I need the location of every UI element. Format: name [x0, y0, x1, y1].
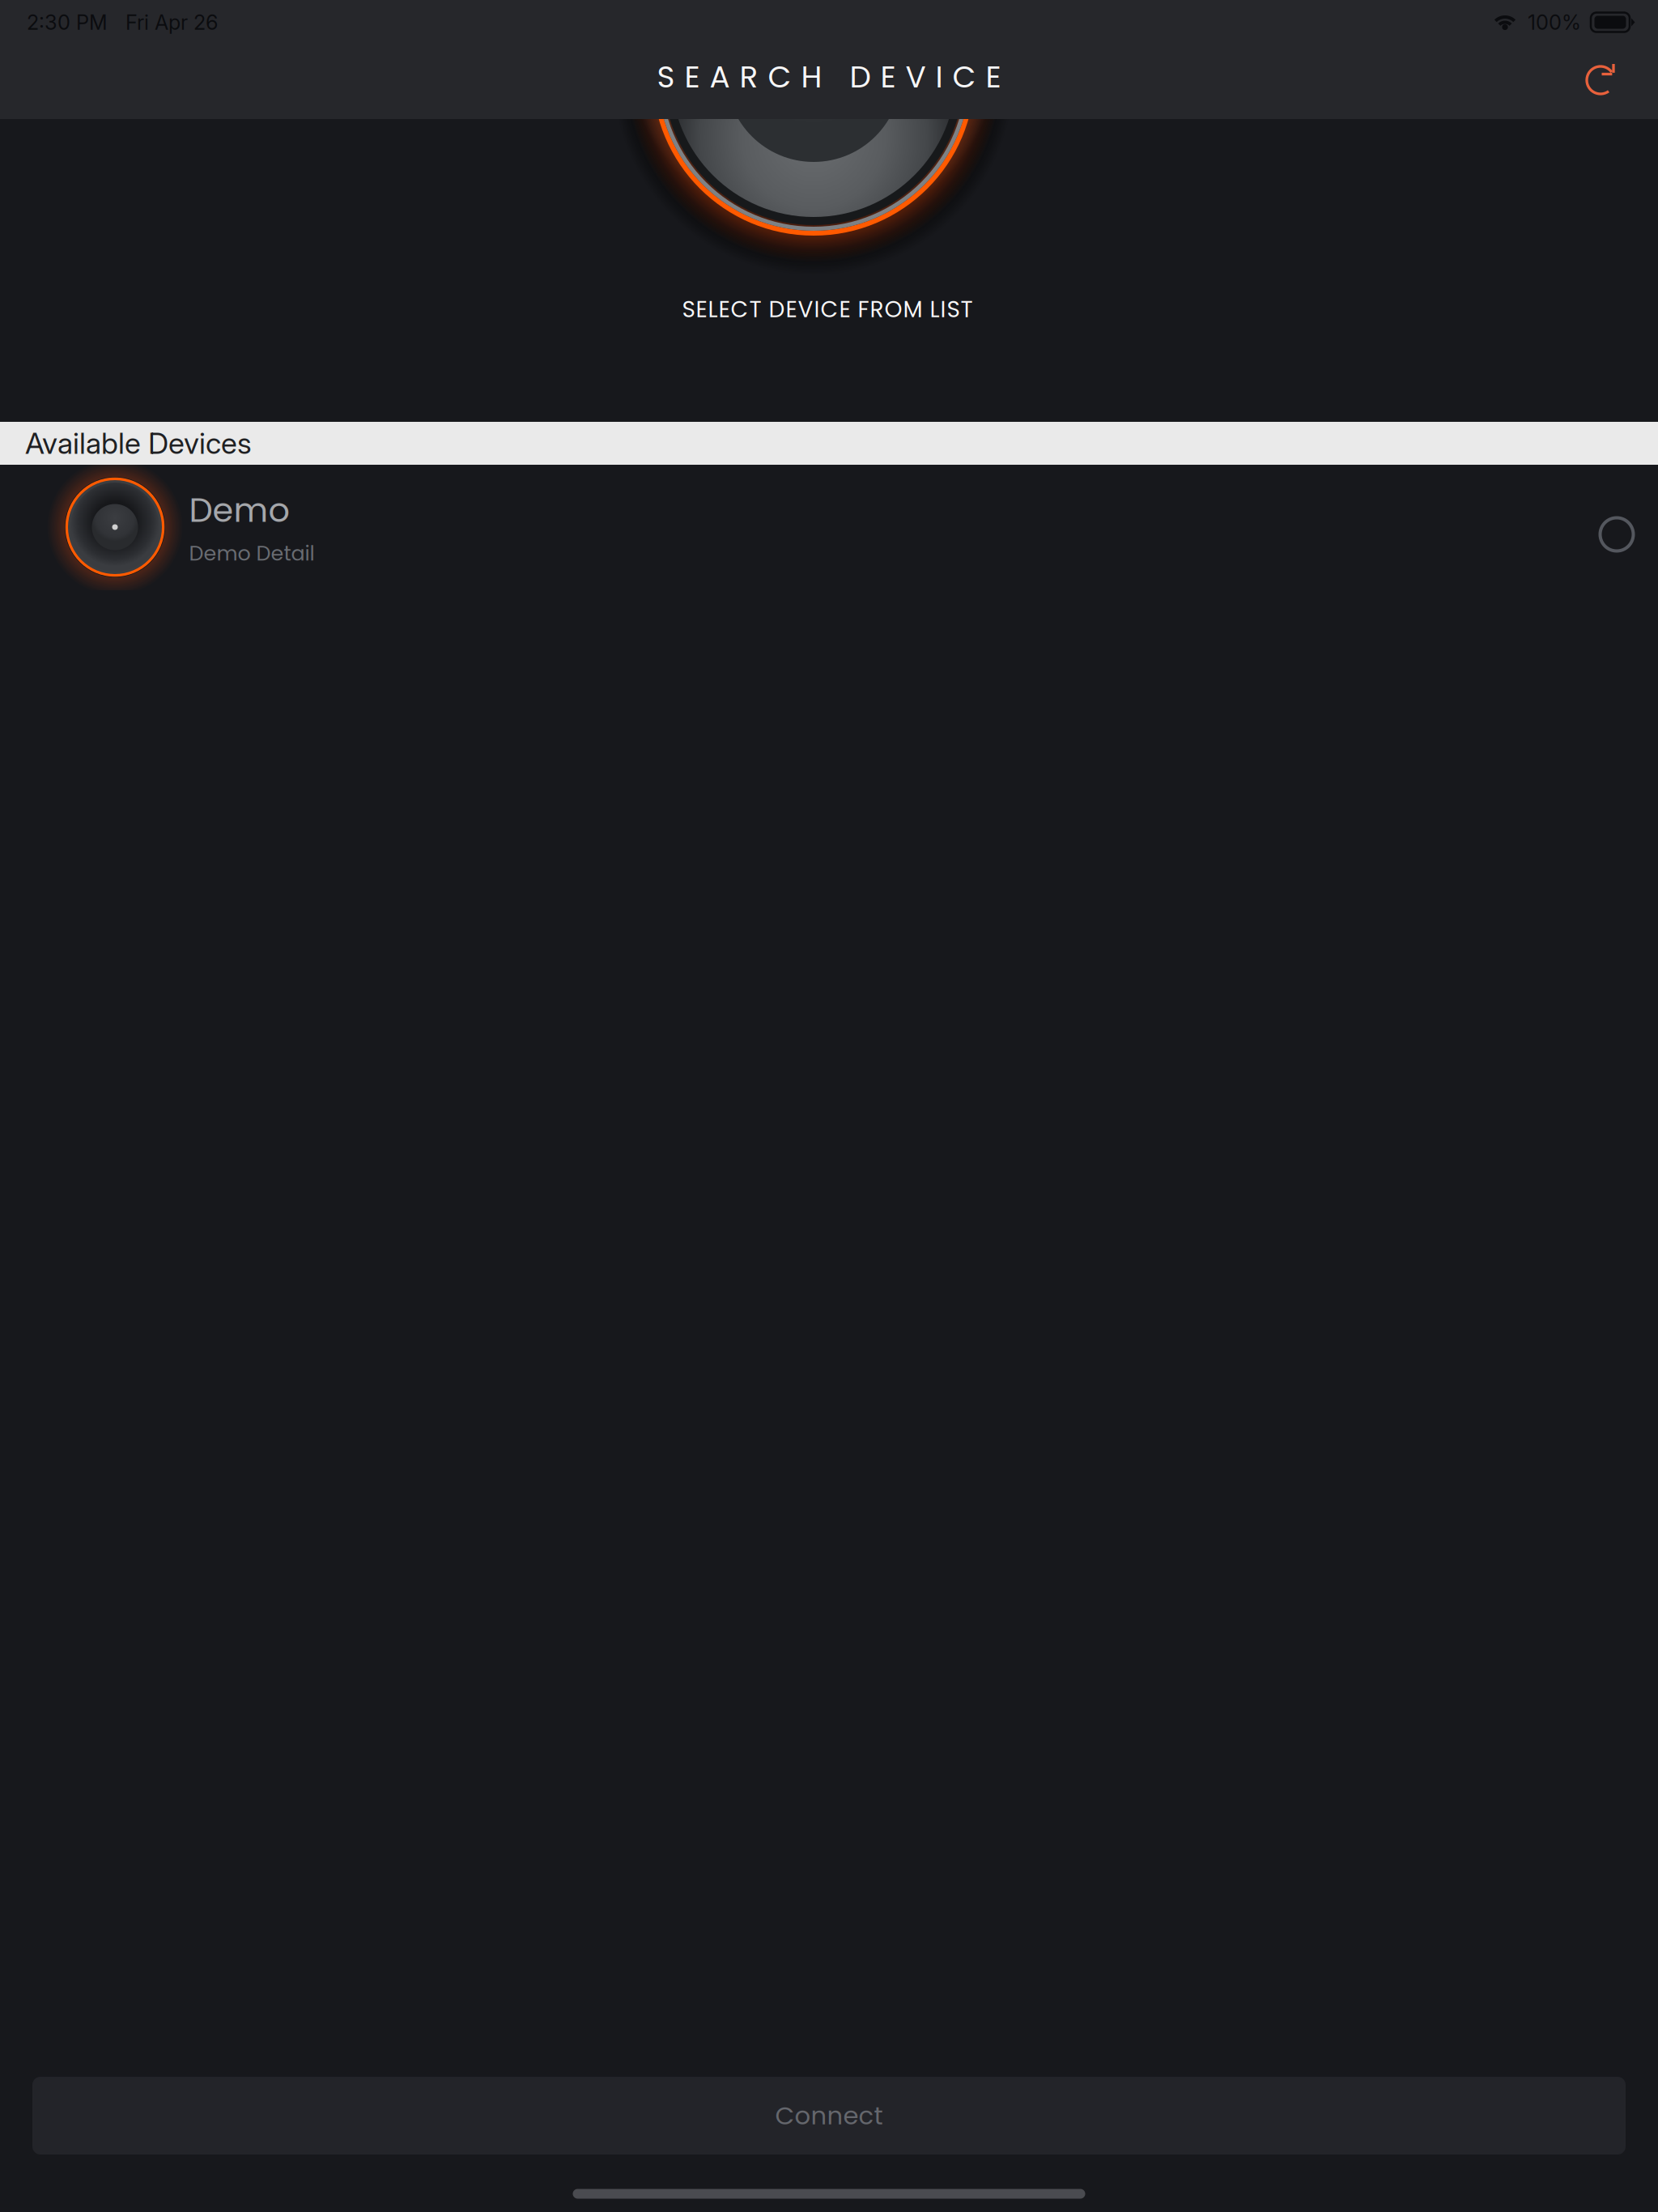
staticText: SEARCH DEVICE [657, 56, 1001, 98]
staticText: 2:30 PM [27, 10, 108, 35]
staticText: SELECT DEVICE FROM LIST [682, 293, 973, 325]
button[interactable]: Connect [32, 2077, 1626, 2155]
staticText: Demo Detail [189, 539, 315, 568]
staticText: Fri Apr 26 [125, 10, 218, 35]
button[interactable]: Refresh [1565, 45, 1636, 116]
staticText: Connect [775, 2098, 883, 2133]
staticText: 100% [1528, 10, 1581, 35]
staticText: Demo [189, 487, 289, 534]
button[interactable]: Demo [0, 465, 1658, 590]
staticText: Available Devices [25, 426, 252, 461]
